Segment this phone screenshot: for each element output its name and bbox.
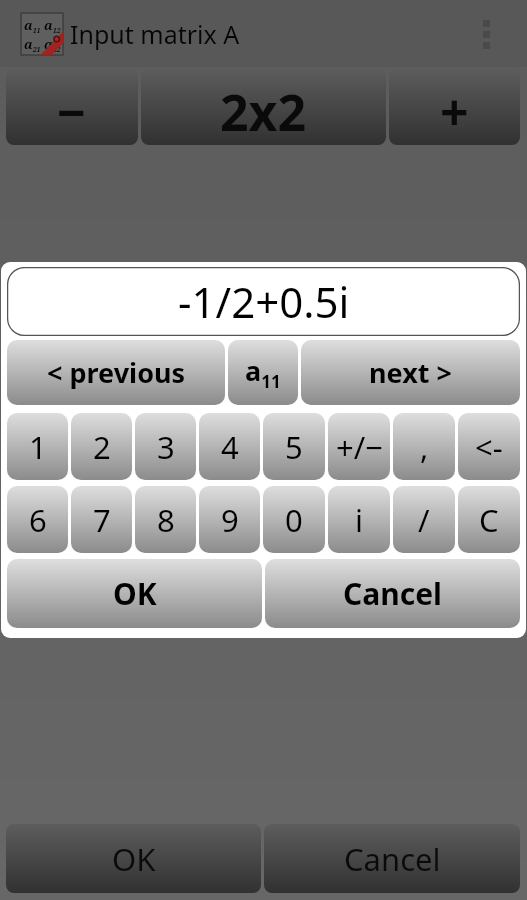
button[interactable]: < previous [7,340,225,405]
staticText: < previous [47,354,186,391]
staticText: Input matrix A [70,17,240,51]
staticText: 2x2 [220,78,307,145]
staticText: 5 [285,426,303,468]
button[interactable]: Cancel [264,824,520,893]
button[interactable]: 8 [135,486,196,553]
staticText: next > [369,354,452,391]
staticText: a11 [245,352,281,393]
button[interactable]: App icon [21,13,63,55]
staticText: 2 [93,426,111,468]
button[interactable]: next > [301,340,520,405]
staticText: 4 [221,426,239,468]
staticText: a21 [24,35,41,53]
staticText: C [479,499,499,541]
button[interactable]: More options [471,4,501,64]
staticText: 6 [29,499,47,541]
button[interactable]: C [458,486,520,553]
button[interactable]: − [6,68,138,145]
button[interactable]: 6 [7,486,68,553]
staticText: a12 [44,16,61,35]
staticText: Cancel [343,573,443,614]
button[interactable]: 2x2 [141,68,386,145]
button[interactable]: 9 [199,486,260,553]
staticText: 9 [221,499,239,541]
staticText: 8 [157,499,175,541]
staticText: , [420,426,429,468]
button[interactable]: OK [7,559,262,628]
button[interactable]: Cancel [265,559,520,628]
button[interactable]: 3 [135,413,196,480]
staticText: 7 [93,499,111,541]
button[interactable]: i [328,486,390,553]
staticText: a11 [24,16,41,35]
button[interactable]: <- [458,413,520,480]
staticText: OK [113,573,157,614]
button[interactable]: 4 [199,413,260,480]
button[interactable]: 2 [71,413,132,480]
staticText: − [57,78,87,145]
button[interactable]: a11 [228,340,298,405]
staticText: / [418,499,430,541]
button[interactable]: +/− [328,413,390,480]
button[interactable]: , [393,413,455,480]
staticText: Cancel [344,838,441,880]
button[interactable]: 1 [7,413,68,480]
button[interactable]: 5 [263,413,325,480]
button[interactable]: / [393,486,455,553]
staticText: 3 [157,426,175,468]
staticText: +/− [336,426,383,468]
staticText: -1/2+0.5i [178,273,350,330]
staticText: + [440,78,469,145]
button[interactable]: 0 [263,486,325,553]
staticText: 0 [285,499,303,541]
staticText: OK [112,838,156,880]
staticText: i [355,499,363,541]
button[interactable]: 7 [71,486,132,553]
button[interactable]: + [389,68,520,145]
staticText: <- [475,426,503,468]
button[interactable]: -1/2+0.5i [7,267,520,336]
staticText: a22 [44,35,61,53]
button[interactable]: OK [6,824,261,893]
staticText: 1 [29,426,47,468]
